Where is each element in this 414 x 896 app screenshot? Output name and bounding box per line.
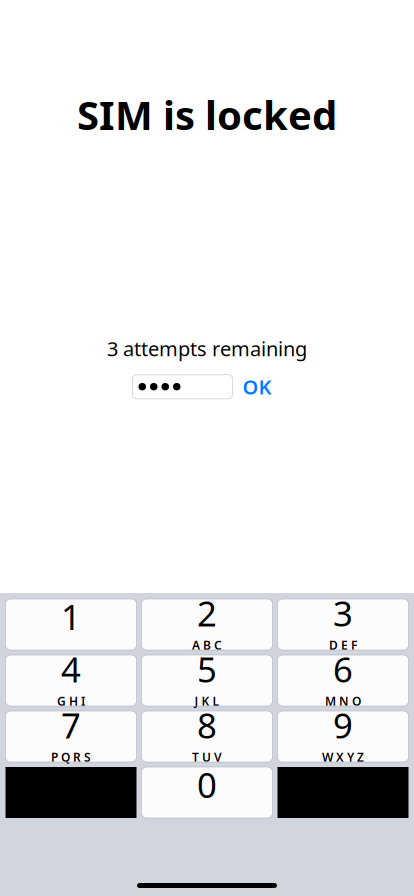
staticText: 9 (333, 702, 353, 748)
button[interactable]: 2 (141, 599, 272, 650)
staticText: 2 (197, 590, 217, 636)
staticText: M N O (325, 693, 361, 709)
staticText: J K L (194, 693, 219, 709)
staticText: 4 (61, 646, 81, 692)
staticText: A B C (192, 637, 222, 653)
button[interactable]: 1 (5, 599, 136, 650)
staticText: 5 (197, 646, 217, 692)
staticText: W X Y Z (322, 749, 364, 765)
staticText: 8 (197, 702, 217, 748)
staticText: OK (242, 373, 271, 400)
staticText: P Q R S (51, 749, 91, 765)
button[interactable]: 8 (141, 711, 272, 762)
staticText: D E F (329, 637, 357, 653)
button[interactable]: OK (232, 375, 281, 399)
button[interactable]: 6 (277, 655, 408, 706)
staticText: 3 (333, 590, 353, 636)
staticText: 1 (61, 593, 81, 639)
button[interactable]: 9 (277, 711, 408, 762)
staticText: SIM is locked (77, 88, 337, 141)
button[interactable]: 3 (277, 599, 408, 650)
staticText: 3 attempts remaining (107, 335, 307, 362)
staticText: G H I (57, 693, 85, 709)
button[interactable]: 0 (141, 767, 272, 818)
staticText: 6 (333, 646, 353, 692)
staticText: 7 (61, 702, 81, 748)
staticText: 0 (197, 761, 217, 807)
button[interactable]: 7 (5, 711, 136, 762)
staticText: T U V (192, 749, 222, 765)
button[interactable]: 5 (141, 655, 272, 706)
button[interactable]: 4 (5, 655, 136, 706)
